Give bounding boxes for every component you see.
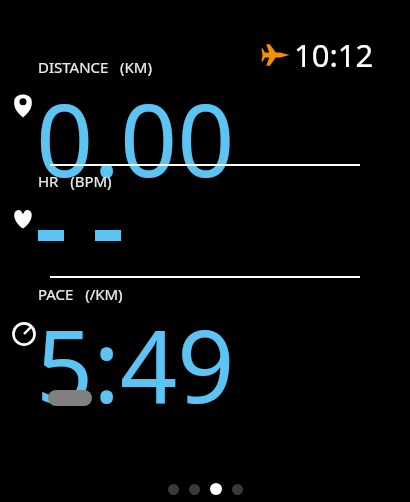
staticText: 5:49 [36,296,235,432]
other: Heart rate [12,209,34,229]
staticText: 0.00 [36,70,235,206]
staticText: HR (BPM) [38,171,112,191]
staticText: 10:12 [294,34,374,76]
staticText: DISTANCE (KM) [38,57,152,77]
staticText: PACE (/KM) [38,284,123,304]
other: Airplane mode on, time 10:12 [262,34,374,76]
other: GPS location [13,92,33,118]
other: Pace [12,322,36,346]
